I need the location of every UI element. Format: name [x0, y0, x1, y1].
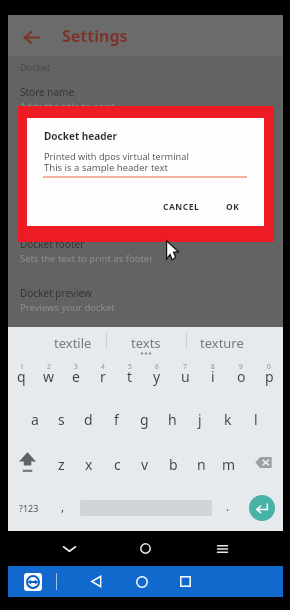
staticText: d: [84, 410, 93, 429]
button[interactable]: Home: [134, 531, 156, 566]
button[interactable]: 1: [8, 353, 35, 395]
button[interactable]: 5: [116, 353, 143, 395]
staticText: g: [140, 410, 149, 429]
staticText: Docket preview: [20, 286, 92, 300]
staticText: 1: [20, 362, 24, 371]
button[interactable]: Hide keyboard: [58, 531, 80, 566]
button[interactable]: h: [158, 395, 186, 439]
button[interactable]: Store name: [8, 85, 283, 119]
button[interactable]: f: [102, 395, 130, 439]
staticText: Store name: [20, 85, 75, 99]
staticText: x: [85, 455, 93, 474]
staticText: 2: [47, 362, 51, 371]
button[interactable]: n: [187, 439, 215, 485]
button[interactable]: v: [131, 439, 159, 485]
button[interactable]: c: [103, 439, 131, 485]
staticText: p: [265, 367, 274, 386]
staticText: u: [181, 367, 190, 386]
staticText: CANCEL: [163, 201, 200, 213]
staticText: w: [43, 367, 55, 386]
button[interactable]: Menu: [211, 531, 233, 566]
button[interactable]: Space: [80, 485, 212, 531]
staticText: j: [198, 410, 202, 429]
button[interactable]: Shift: [8, 439, 47, 485]
staticText: 9: [239, 362, 243, 371]
staticText: Prints the header text: [20, 149, 117, 162]
button[interactable]: .: [217, 485, 239, 531]
button[interactable]: Docket header: [8, 134, 283, 168]
button[interactable]: texture: [184, 330, 260, 356]
button[interactable]: CANCEL: [156, 196, 207, 218]
button[interactable]: Enter: [249, 485, 275, 531]
staticText: 7: [183, 362, 187, 371]
staticText: m: [222, 455, 236, 474]
staticText: Settings: [62, 25, 128, 47]
button[interactable]: Docket footer: [8, 237, 283, 271]
staticText: textile: [54, 334, 92, 352]
staticText: 3: [74, 362, 78, 371]
staticText: OK: [226, 201, 240, 213]
staticText: 0: [267, 362, 271, 371]
staticText: v: [141, 455, 149, 474]
staticText: Docket header: [20, 134, 89, 148]
staticText: l: [254, 410, 258, 429]
button[interactable]: 4: [89, 353, 116, 395]
staticText: Printed with dpos virtual terminal: [44, 150, 189, 163]
staticText: 6: [155, 362, 159, 371]
button[interactable]: z: [47, 439, 75, 485]
staticText: s: [58, 410, 65, 429]
staticText: a: [31, 410, 39, 429]
staticText: t: [127, 367, 133, 386]
button[interactable]: g: [130, 395, 158, 439]
button[interactable]: k: [214, 395, 242, 439]
button[interactable]: ,: [52, 485, 74, 531]
button[interactable]: 3: [62, 353, 89, 395]
staticText: .: [226, 498, 230, 514]
button[interactable]: 9: [227, 353, 255, 395]
staticText: Docket: [20, 61, 51, 73]
staticText: ?123: [19, 502, 39, 514]
button[interactable]: a: [21, 395, 48, 439]
button[interactable]: ?123: [15, 485, 43, 531]
button[interactable]: Docket body: [8, 183, 283, 217]
staticText: Prints the body text: [20, 198, 108, 211]
button[interactable]: OK: [219, 196, 247, 218]
button[interactable]: 0: [255, 353, 283, 395]
staticText: texts: [131, 334, 161, 352]
button[interactable]: l: [242, 395, 270, 439]
button[interactable]: Backspace: [243, 439, 283, 485]
button[interactable]: m: [215, 439, 243, 485]
staticText: y: [153, 367, 161, 386]
button[interactable]: 6: [143, 353, 171, 395]
button[interactable]: 7: [171, 353, 199, 395]
staticText: ,: [61, 498, 65, 514]
staticText: q: [17, 367, 26, 386]
button[interactable]: x: [75, 439, 103, 485]
button[interactable]: Back: [85, 566, 107, 597]
button[interactable]: Recents: [174, 566, 196, 597]
button[interactable]: Home: [131, 566, 153, 597]
staticText: Docket body: [20, 183, 79, 197]
button[interactable]: Docket preview: [8, 286, 283, 320]
staticText: This is a sample header text: [44, 161, 168, 174]
staticText: 8: [211, 362, 215, 371]
button[interactable]: TeamViewer: [24, 573, 42, 591]
button[interactable]: b: [159, 439, 187, 485]
staticText: 5: [128, 362, 132, 371]
staticText: texture: [200, 334, 244, 352]
staticText: k: [224, 410, 232, 429]
button[interactable]: d: [75, 395, 102, 439]
button[interactable]: texts: [108, 330, 184, 356]
staticText: b: [169, 455, 178, 474]
staticText: n: [197, 455, 206, 474]
staticText: Docket header: [44, 129, 118, 143]
button[interactable]: 2: [35, 353, 62, 395]
staticText: 4: [101, 362, 105, 371]
button[interactable]: textile: [35, 330, 111, 356]
button[interactable]: s: [48, 395, 75, 439]
button[interactable]: Back: [21, 27, 41, 47]
button[interactable]: j: [186, 395, 214, 439]
staticText: c: [114, 455, 121, 474]
staticText: e: [72, 367, 80, 386]
button[interactable]: 8: [199, 353, 227, 395]
